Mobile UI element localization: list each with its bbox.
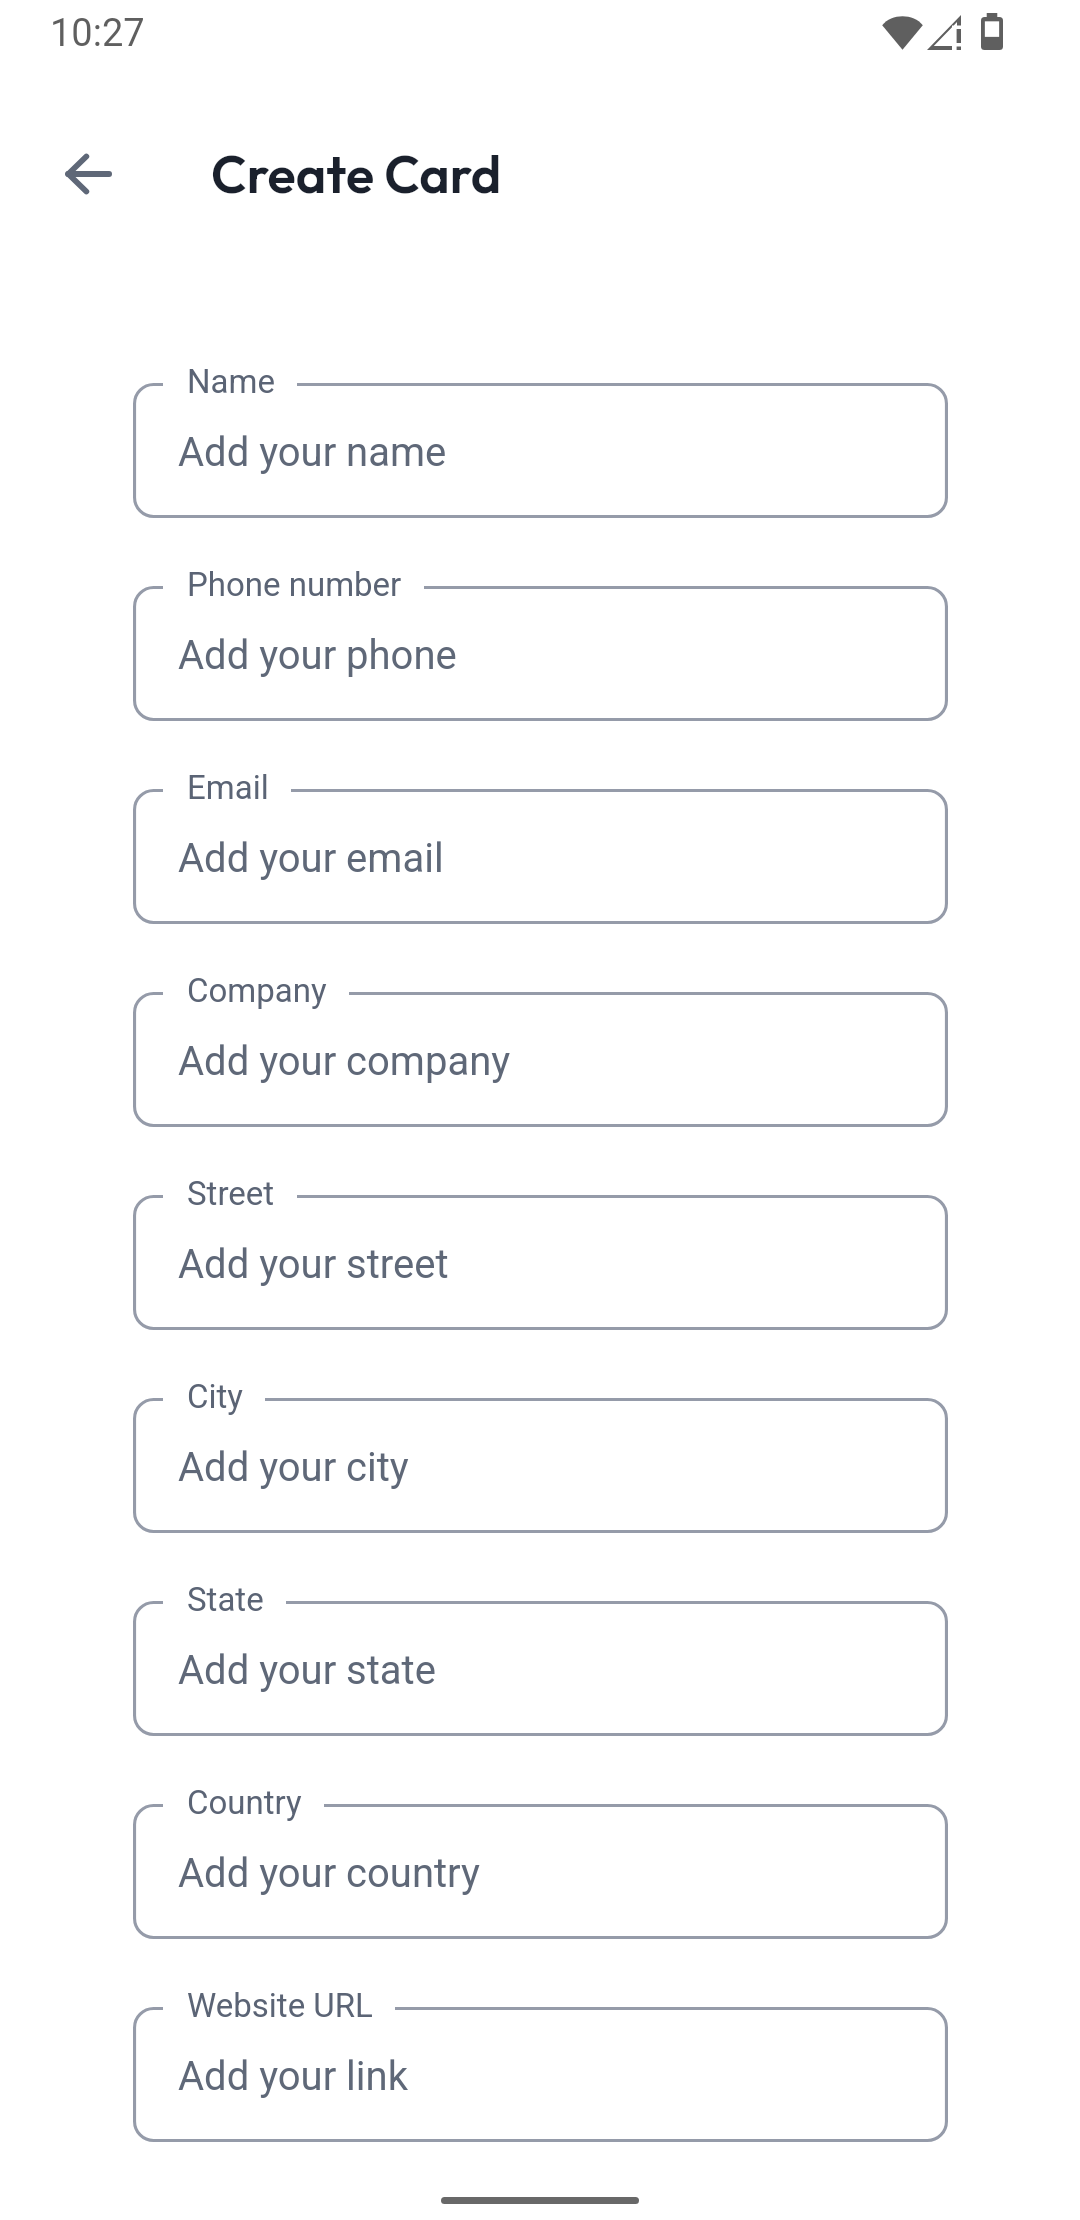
button[interactable]: Add your name	[133, 383, 948, 518]
staticText: Add your state	[178, 1647, 436, 1694]
staticText: State	[187, 1580, 264, 1619]
staticText: Add your name	[178, 429, 447, 476]
staticText: Add your city	[178, 1444, 409, 1491]
staticText: Add your country	[178, 1850, 480, 1897]
staticText: Add your company	[178, 1038, 511, 1085]
button[interactable]: Add your phone	[133, 586, 948, 721]
staticText: Add your street	[178, 1241, 449, 1288]
staticText: Add your link	[178, 2053, 408, 2100]
button[interactable]: Add your email	[133, 789, 948, 924]
staticText: Add your email	[178, 835, 444, 882]
staticText: Website URL	[187, 1986, 373, 2025]
button[interactable]: Add your link	[133, 2007, 948, 2142]
staticText: Street	[187, 1174, 275, 1213]
staticText: 10:27	[50, 11, 145, 56]
button[interactable]: Back	[44, 130, 132, 218]
button[interactable]: Add your state	[133, 1601, 948, 1736]
button[interactable]: Add your street	[133, 1195, 948, 1330]
button[interactable]: Add your country	[133, 1804, 948, 1939]
button[interactable]: Add your city	[133, 1398, 948, 1533]
staticText: Create Card	[211, 141, 502, 207]
staticText: Add your phone	[178, 632, 457, 679]
staticText: Name	[187, 362, 275, 401]
staticText: Phone number	[187, 565, 402, 604]
staticText: City	[187, 1377, 243, 1416]
staticText: Company	[187, 971, 327, 1010]
staticText: Country	[187, 1783, 302, 1822]
staticText: Email	[187, 768, 269, 807]
button[interactable]: Add your company	[133, 992, 948, 1127]
